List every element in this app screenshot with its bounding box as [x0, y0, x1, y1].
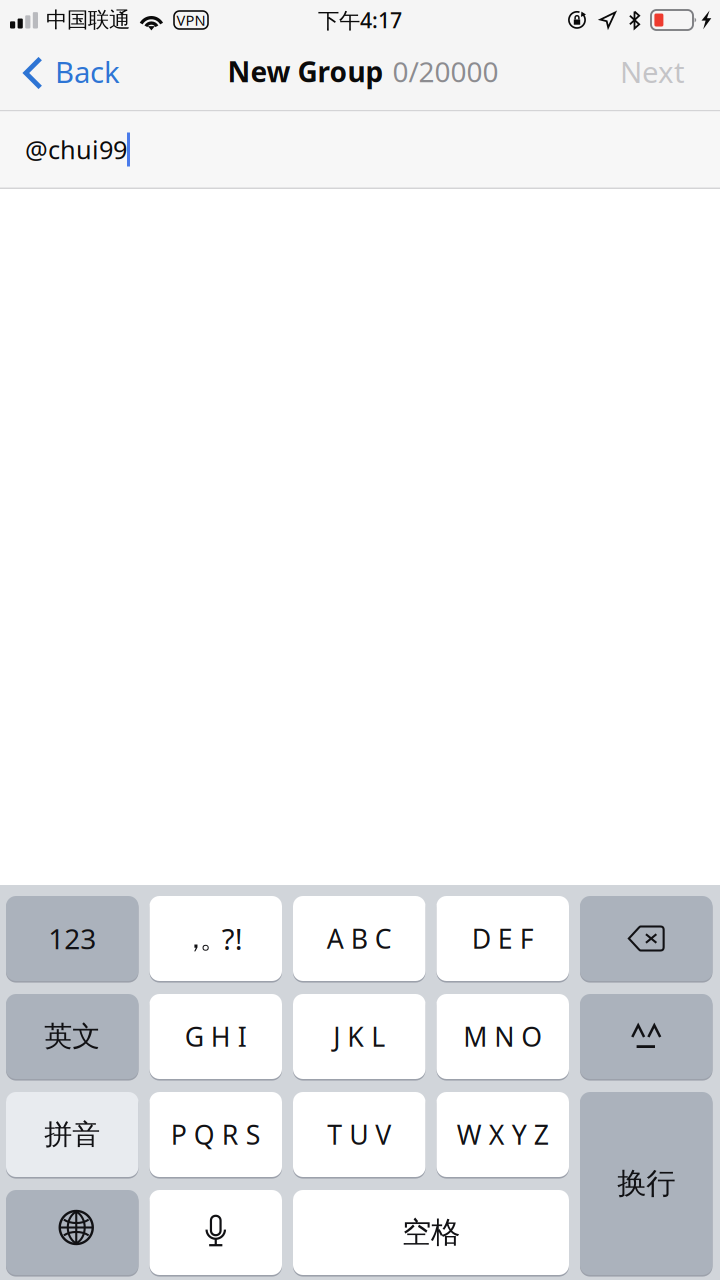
button[interactable]: Punctuation	[149, 896, 282, 983]
staticText: 中国联通	[46, 7, 130, 33]
button[interactable]: Emoji	[580, 994, 712, 1081]
button[interactable]: 换行	[580, 1092, 712, 1277]
staticText: J K L	[333, 1019, 385, 1054]
button[interactable]: Dictation	[149, 1190, 282, 1277]
staticText: ，	[182, 921, 210, 956]
staticText: 换行	[617, 1165, 675, 1201]
staticText: 下午4:17	[318, 6, 402, 34]
button[interactable]: @chui99	[0, 111, 720, 187]
button[interactable]: D E F	[436, 896, 569, 983]
staticText: VPN	[176, 10, 205, 30]
button[interactable]: Next	[598, 46, 720, 110]
button[interactable]: W X Y Z	[436, 1092, 569, 1179]
staticText: Back	[55, 52, 120, 91]
button[interactable]: 123	[6, 896, 138, 983]
staticText: ?!	[222, 919, 243, 958]
button[interactable]: 拼音	[6, 1092, 138, 1179]
button[interactable]: Next keyboard	[6, 1190, 138, 1277]
staticText: 。	[200, 921, 228, 956]
button[interactable]: Delete	[580, 896, 712, 983]
button[interactable]: T U V	[293, 1092, 425, 1179]
staticText: 0/20000	[392, 53, 498, 90]
button[interactable]: G H I	[149, 994, 282, 1081]
staticText: W X Y Z	[457, 1117, 549, 1152]
button[interactable]: J K L	[293, 994, 425, 1081]
button[interactable]: 英文	[6, 994, 138, 1081]
button[interactable]: 空格	[293, 1190, 569, 1277]
staticText: D E F	[472, 921, 534, 956]
staticText: A B C	[327, 921, 392, 956]
button[interactable]: M N O	[436, 994, 569, 1081]
staticText: T U V	[327, 1117, 391, 1152]
staticText: @chui99	[25, 133, 127, 166]
button[interactable]: Back	[0, 46, 136, 110]
staticText: P Q R S	[171, 1117, 261, 1152]
button[interactable]: A B C	[293, 896, 425, 983]
button[interactable]: P Q R S	[149, 1092, 282, 1179]
staticText: Next	[620, 52, 685, 91]
staticText: M N O	[463, 1019, 542, 1054]
staticText: New Group	[227, 53, 383, 90]
staticText: 拼音	[44, 1117, 100, 1152]
staticText: G H I	[185, 1019, 247, 1054]
staticText: 空格	[402, 1214, 460, 1250]
staticText: 英文	[44, 1019, 100, 1054]
staticText: 123	[48, 920, 96, 957]
